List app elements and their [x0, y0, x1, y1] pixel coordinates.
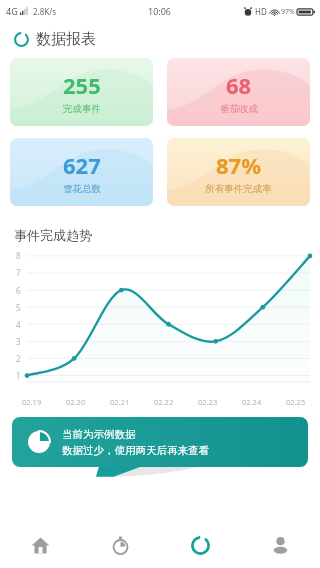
button[interactable]: 68	[167, 58, 310, 126]
staticText: 2.8K/s	[33, 6, 57, 17]
staticText: 当前为示例数据	[62, 428, 136, 441]
staticText: 事件完成趋势	[14, 227, 92, 243]
staticText: 2	[16, 353, 21, 364]
button[interactable]: 627	[10, 138, 153, 206]
staticText: 数据过少，使用两天后再来查看	[62, 444, 209, 457]
staticText: 5	[16, 302, 21, 313]
staticText: 所有事件完成率	[205, 183, 272, 195]
staticText: 完成事件	[63, 103, 101, 115]
staticText: 02.24	[242, 397, 262, 407]
staticText: 番茄收成	[220, 103, 258, 115]
staticText: 02.25	[286, 397, 306, 407]
staticText: 6	[16, 285, 21, 296]
button[interactable]: Home	[0, 522, 80, 568]
staticText: 97%	[281, 7, 295, 17]
button[interactable]: Timer	[80, 522, 160, 568]
staticText: 4G	[6, 5, 18, 17]
staticText: 627	[63, 150, 101, 180]
button[interactable]: Reports	[160, 522, 240, 568]
staticText: 雪花总数	[63, 183, 101, 195]
staticText: 7	[16, 267, 21, 278]
staticText: 87%	[216, 150, 262, 180]
staticText: 255	[63, 70, 101, 100]
staticText: 02.22	[154, 397, 174, 407]
staticText: 数据报表	[36, 30, 96, 49]
staticText: 02.23	[198, 397, 218, 407]
staticText: 68	[226, 70, 252, 100]
button[interactable]: 当前为示例数据	[12, 417, 308, 467]
staticText: 10:06	[148, 5, 172, 17]
staticText: 4	[16, 319, 21, 330]
staticText: 02.20	[66, 397, 86, 407]
button[interactable]: 87%	[167, 138, 310, 206]
staticText: 02.21	[110, 397, 130, 407]
staticText: 02.19	[22, 397, 42, 407]
button[interactable]: 255	[10, 58, 153, 126]
staticText: HD	[255, 6, 267, 17]
staticText: 8	[16, 250, 21, 261]
staticText: 3	[16, 336, 21, 347]
button[interactable]: Profile	[240, 522, 320, 568]
staticText: 1	[16, 370, 21, 381]
